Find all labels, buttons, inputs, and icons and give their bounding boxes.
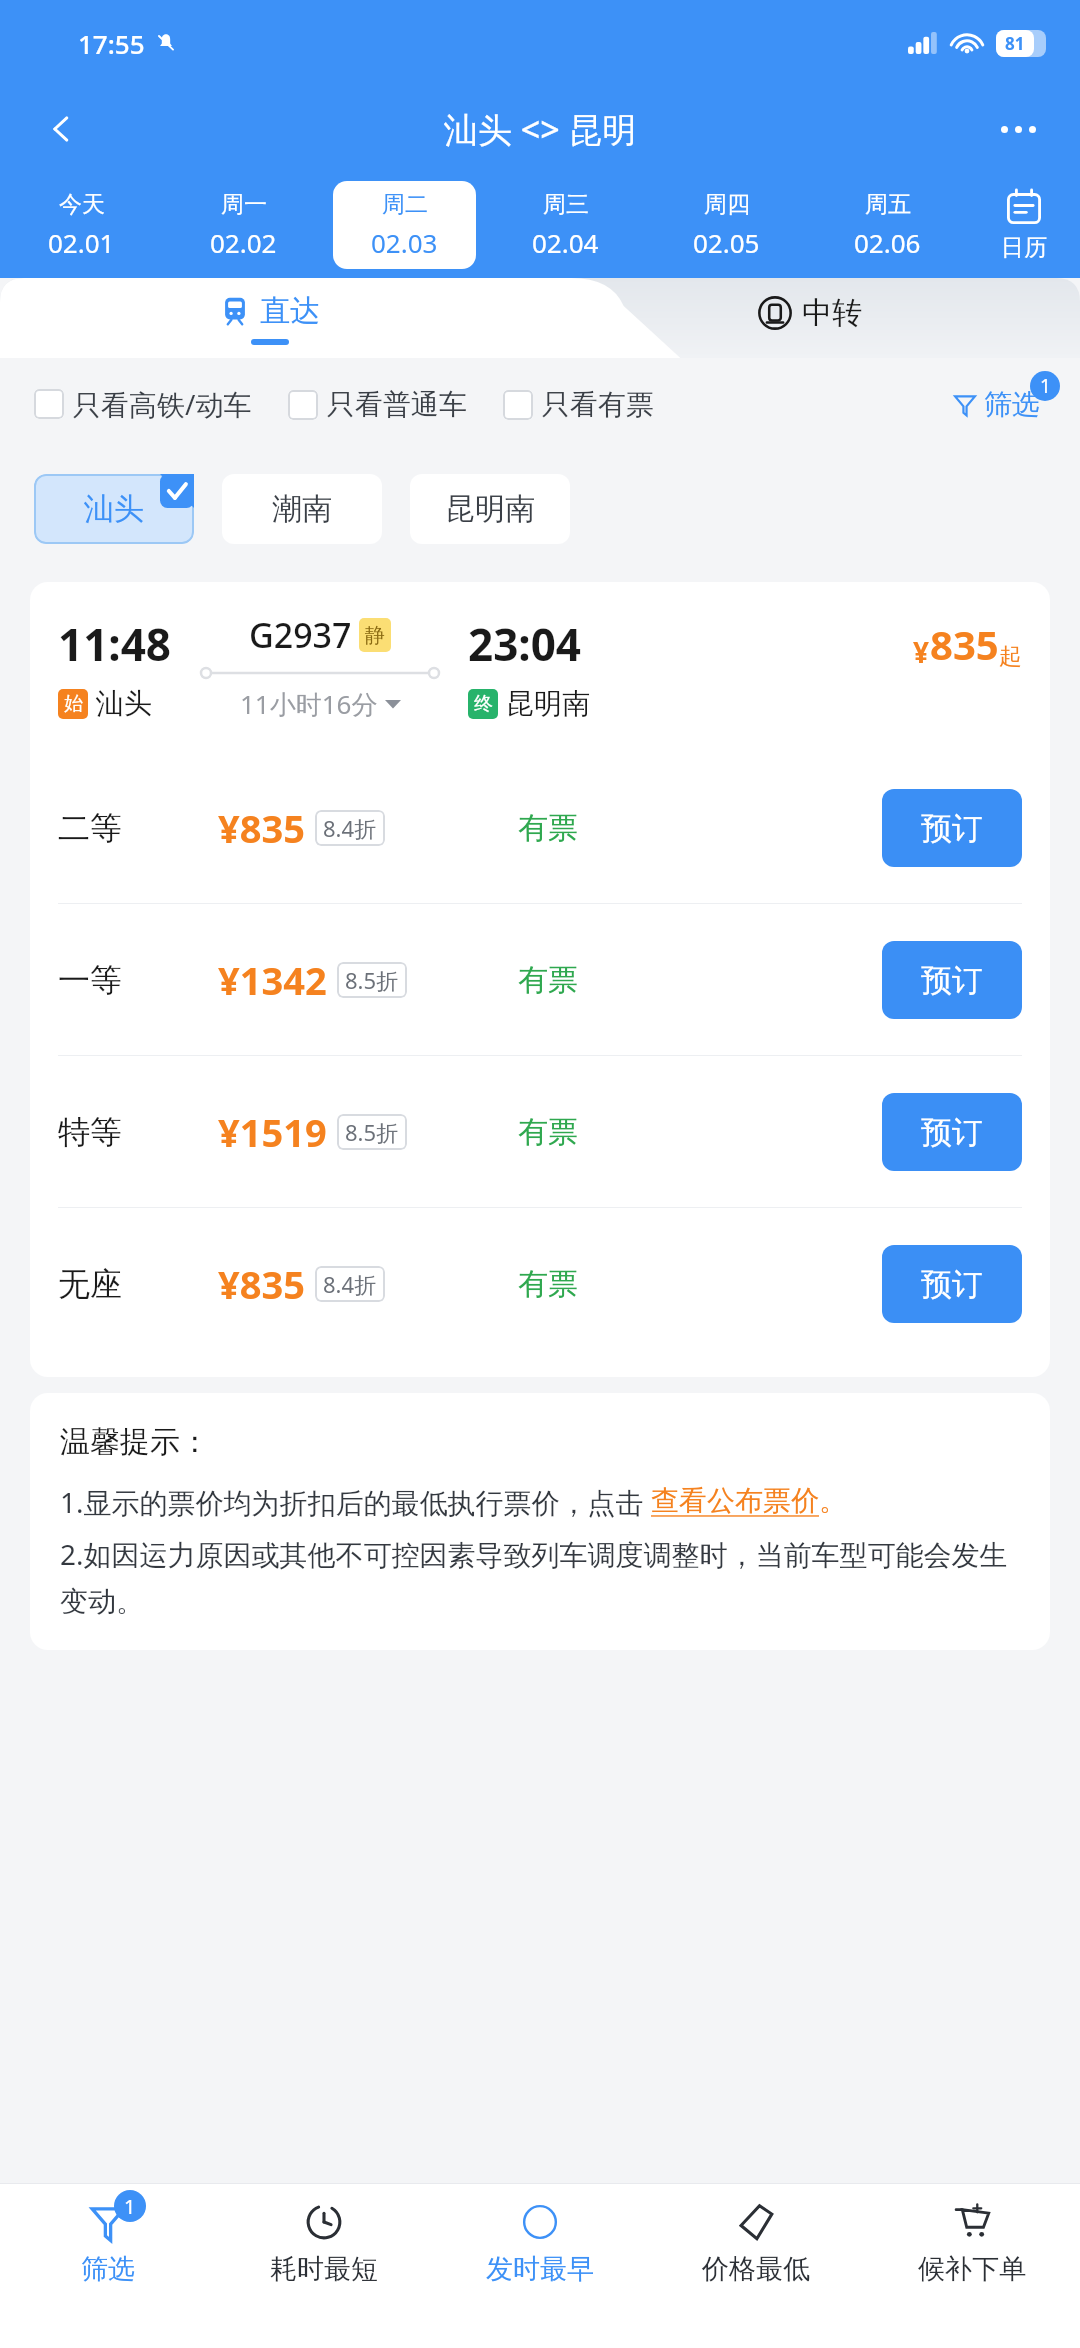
staticText: 只看高铁/动车 [73, 385, 252, 423]
staticText: 周一 [221, 190, 267, 219]
staticText: 11小时16分 [240, 686, 378, 722]
staticText: 发时最早 [486, 2252, 594, 2286]
staticText: 835 [930, 617, 999, 671]
staticText: ¥1342 [218, 954, 327, 1006]
staticText: 汕头 [84, 490, 144, 528]
button[interactable]: 发时最早 [432, 2184, 648, 2348]
staticText: 汕头 <> 昆明 [444, 106, 637, 152]
staticText: 汕头 [96, 686, 152, 721]
button[interactable]: 候补下单 [864, 2184, 1080, 2348]
button[interactable]: 中转 [540, 278, 1080, 358]
button[interactable]: 价格最低 [648, 2184, 864, 2348]
button[interactable]: More [986, 97, 1050, 161]
staticText: 81 [1005, 32, 1025, 55]
staticText: 02.04 [532, 225, 599, 260]
staticText: 02.03 [371, 225, 438, 260]
button[interactable]: 11:48 [30, 582, 1050, 752]
staticText: 2.如因运力原因或其他不可控因素导致列车调度调整时，当前车型可能会发生变动。 [60, 1535, 1020, 1620]
button[interactable]: 预订 [882, 1093, 1022, 1171]
staticText: 有票 [518, 961, 578, 999]
staticText: 02.06 [854, 225, 921, 260]
button[interactable]: 只看有票 [503, 387, 654, 422]
button[interactable]: 周二 [333, 181, 476, 269]
button[interactable]: 汕头 [34, 474, 194, 544]
staticText: 直达 [260, 292, 320, 330]
staticText: 1 [1040, 373, 1051, 399]
button[interactable]: 今天 [9, 181, 153, 269]
button[interactable]: 耗时最短 [216, 2184, 432, 2348]
staticText: 预订 [921, 1265, 983, 1304]
staticText: 周三 [543, 190, 589, 219]
staticText: 候补下单 [918, 2252, 1026, 2286]
staticText: 起 [999, 642, 1022, 671]
staticText: 预订 [921, 1113, 983, 1152]
staticText: 筛选 [81, 2252, 135, 2286]
button[interactable]: Back [30, 97, 94, 161]
button[interactable]: 预订 [882, 1245, 1022, 1323]
button[interactable]: 昆明南 [410, 474, 570, 544]
staticText: 02.02 [210, 225, 277, 260]
staticText: 周五 [865, 190, 911, 219]
staticText: 日历 [1001, 233, 1047, 262]
staticText: 无座 [58, 1264, 122, 1304]
button[interactable]: 预订 [882, 941, 1022, 1019]
staticText: 周二 [382, 190, 428, 219]
staticText: ¥ [913, 633, 930, 671]
staticText: 耗时最短 [270, 2252, 378, 2286]
staticText: ¥835 [218, 802, 305, 854]
staticText: 今天 [59, 190, 105, 219]
button[interactable]: 筛选 [952, 387, 1046, 422]
staticText: 只看普通车 [327, 387, 467, 422]
button[interactable]: 周五 [816, 181, 959, 269]
staticText: G2937 [249, 612, 352, 658]
staticText: 02.05 [693, 225, 760, 260]
staticText: 昆明南 [506, 686, 590, 721]
staticText: 02.01 [48, 225, 115, 260]
staticText: 1 [124, 2193, 136, 2220]
button[interactable]: 只看普通车 [288, 387, 467, 422]
button[interactable]: Calendar [968, 172, 1080, 278]
staticText: 一等 [58, 960, 122, 1000]
button[interactable]: 只看高铁/动车 [34, 385, 252, 423]
staticText: ¥835 [218, 1258, 305, 1310]
staticText: 17:55 [78, 26, 145, 61]
staticText: 预订 [921, 961, 983, 1000]
staticText: 温馨提示： [60, 1423, 210, 1461]
button[interactable]: 查看公布票价 [651, 1483, 819, 1518]
staticText: 始 [64, 692, 83, 716]
staticText: 周四 [704, 190, 750, 219]
button[interactable]: 潮南 [222, 474, 382, 544]
button[interactable]: 周四 [655, 181, 798, 269]
staticText: 11:48 [58, 614, 172, 674]
button[interactable]: 1 [0, 2184, 216, 2348]
staticText: 静 [365, 623, 385, 648]
staticText: 。 [819, 1483, 847, 1518]
staticText: 终 [474, 692, 493, 716]
staticText: 1.显示的票价均为折扣后的最低执行票价，点击 [60, 1483, 651, 1521]
staticText: 预订 [921, 809, 983, 848]
staticText: 二等 [58, 808, 122, 848]
staticText: 有票 [518, 1113, 578, 1151]
staticText: 8.5折 [345, 965, 399, 995]
staticText: 筛选 [984, 387, 1040, 422]
staticText: 潮南 [272, 490, 332, 528]
staticText: 有票 [518, 809, 578, 847]
staticText: 特等 [58, 1112, 122, 1152]
staticText: 8.4折 [323, 1269, 377, 1299]
staticText: 昆明南 [445, 490, 535, 528]
button[interactable]: 周一 [171, 181, 315, 269]
staticText: 有票 [518, 1265, 578, 1303]
button[interactable]: 预订 [882, 789, 1022, 867]
staticText: 8.4折 [323, 813, 377, 843]
button[interactable]: 直达 [0, 278, 540, 358]
staticText: 中转 [802, 294, 862, 332]
staticText: 23:04 [468, 614, 582, 674]
button[interactable]: 周三 [494, 181, 637, 269]
staticText: 8.5折 [345, 1117, 399, 1147]
staticText: ¥1519 [218, 1106, 327, 1158]
staticText: 价格最低 [702, 2252, 810, 2286]
staticText: 只看有票 [542, 387, 654, 422]
